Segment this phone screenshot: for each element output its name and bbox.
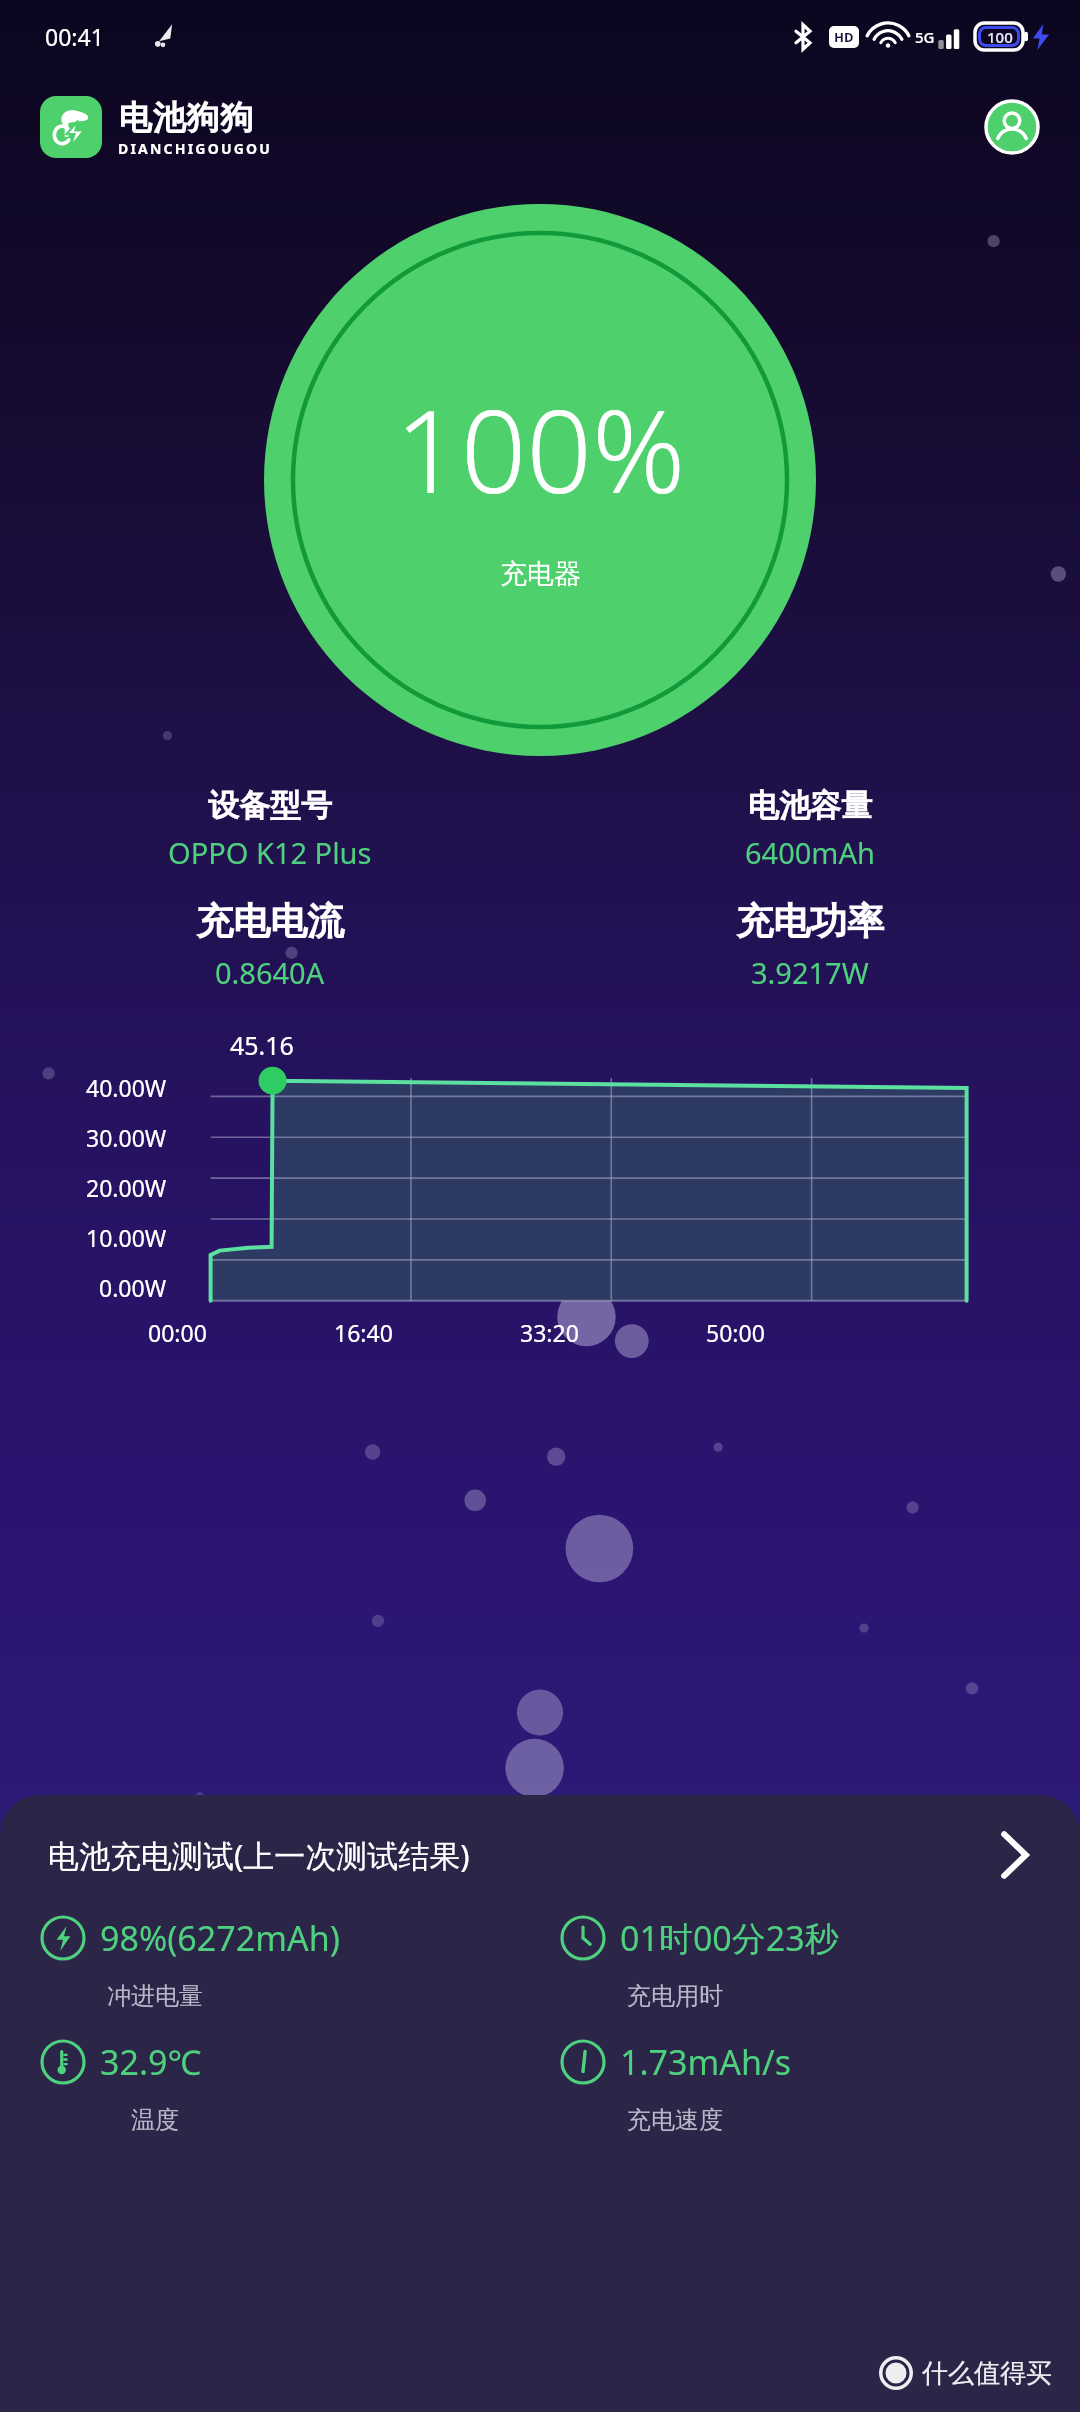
staticText: 电池容量 <box>748 786 872 825</box>
staticText: 40.00W <box>86 1072 167 1103</box>
staticText: 温度 <box>131 2105 179 2135</box>
button[interactable]: Profile <box>984 99 1040 155</box>
staticText: 充电用时 <box>627 1981 723 2011</box>
staticText: OPPO K12 Plus <box>168 833 372 872</box>
staticText: 电池狗狗 <box>118 97 254 139</box>
staticText: 100 <box>987 27 1013 47</box>
staticText: 98%(6272mAh) <box>100 1915 340 1961</box>
staticText: 6400mAh <box>745 833 875 872</box>
staticText: 3.9217W <box>751 953 869 992</box>
staticText: 充电电流 <box>196 898 344 945</box>
staticText: 什么值得买 <box>922 2357 1052 2390</box>
button[interactable] <box>40 96 102 158</box>
staticText: 00:41 <box>45 21 104 52</box>
staticText: 1.73mAh/s <box>620 2039 791 2085</box>
staticText: 5G <box>915 27 935 47</box>
staticText: 50:00 <box>706 1317 765 1348</box>
staticText: 01时00分23秒 <box>620 1915 839 1961</box>
other: Open <box>998 1829 1032 1881</box>
staticText: 00:00 <box>148 1317 207 1348</box>
staticText: 电池充电测试(上一次测试结果) <box>48 1834 470 1876</box>
staticText: 充电速度 <box>627 2105 723 2135</box>
staticText: 16:40 <box>334 1317 393 1348</box>
staticText: 充电功率 <box>736 898 884 945</box>
staticText: 30.00W <box>86 1122 167 1153</box>
staticText: 0.8640A <box>215 953 325 992</box>
staticText: 32.9℃ <box>100 2039 202 2085</box>
button[interactable]: 电池充电测试(上一次测试结果) <box>0 1795 1080 1915</box>
staticText: 100% <box>395 370 686 527</box>
staticText: 10.00W <box>86 1222 167 1253</box>
staticText: 0.00W <box>99 1272 167 1303</box>
staticText: 20.00W <box>86 1172 167 1203</box>
staticText: 45.16 <box>230 1028 294 1062</box>
staticText: DIANCHIGOUGOU <box>118 139 273 158</box>
staticText: 33:20 <box>520 1317 579 1348</box>
staticText: 冲进电量 <box>107 1981 203 2011</box>
staticText: 充电器 <box>500 557 581 591</box>
staticText: 设备型号 <box>208 786 332 825</box>
staticText: HD <box>834 28 854 46</box>
